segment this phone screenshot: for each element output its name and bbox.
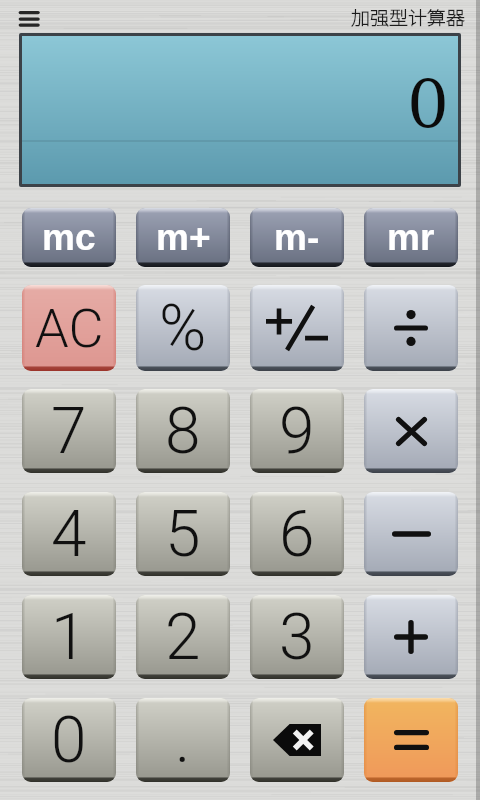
staticText: AC (35, 297, 104, 360)
staticText: 6 (279, 497, 315, 572)
staticText: m- (274, 217, 320, 258)
staticText: 4 (51, 497, 87, 572)
button[interactable]: 9 (250, 389, 344, 473)
button[interactable]: Backspace (250, 698, 344, 782)
staticText: 3 (279, 600, 315, 675)
staticText: 9 (279, 394, 315, 469)
button[interactable]: 5 (136, 492, 230, 576)
button[interactable]: Menu (12, 4, 46, 32)
button[interactable]: . (136, 698, 230, 782)
staticText: 5 (165, 497, 201, 572)
staticText: . (175, 703, 191, 778)
button[interactable]: 1 (22, 595, 116, 679)
staticText: 8 (165, 394, 201, 469)
button[interactable]: Plus (364, 595, 458, 679)
button[interactable]: mr (364, 208, 458, 267)
staticText: 0 (407, 66, 449, 143)
staticText: mc (42, 217, 96, 258)
button[interactable]: m+ (136, 208, 230, 267)
button[interactable]: m- (250, 208, 344, 267)
button[interactable]: 8 (136, 389, 230, 473)
button[interactable]: 6 (250, 492, 344, 576)
button[interactable]: Multiply (364, 389, 458, 473)
staticText: mr (387, 217, 435, 258)
button[interactable]: 0 (22, 698, 116, 782)
staticText: % (159, 291, 207, 366)
button[interactable]: mc (22, 208, 116, 267)
button[interactable]: 3 (250, 595, 344, 679)
button[interactable]: % (136, 285, 230, 371)
button[interactable]: Equals (364, 698, 458, 782)
button[interactable] (364, 285, 458, 371)
staticText: 加强型计算器 (351, 3, 466, 31)
staticText: m+ (156, 217, 211, 258)
staticText: 0 (51, 703, 87, 778)
button[interactable]: 2 (136, 595, 230, 679)
staticText: 1 (51, 600, 87, 675)
staticText: 7 (51, 394, 87, 469)
staticText: 2 (165, 600, 201, 675)
button[interactable]: Minus (364, 492, 458, 576)
button[interactable] (250, 285, 344, 371)
button[interactable]: 7 (22, 389, 116, 473)
button[interactable]: AC (22, 285, 116, 371)
button[interactable]: 4 (22, 492, 116, 576)
